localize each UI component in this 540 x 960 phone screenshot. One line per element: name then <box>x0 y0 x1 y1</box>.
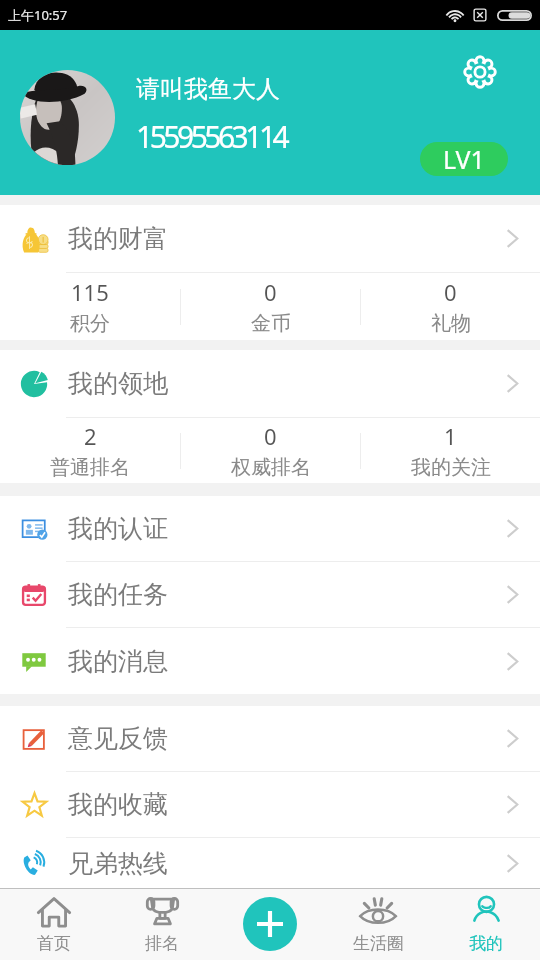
staticText: 上午10:57 <box>8 6 68 24</box>
staticText: 生活圈 <box>353 933 404 954</box>
button[interactable]: Avatar <box>20 70 115 165</box>
button[interactable]: Add <box>243 897 297 951</box>
staticText: 兄弟热线 <box>68 848 168 879</box>
button[interactable]: 意见反馈 <box>0 706 540 771</box>
button[interactable]: 我的 <box>432 889 540 960</box>
button[interactable]: 我的任务 <box>0 562 540 627</box>
staticText: 普通排名 <box>50 455 130 480</box>
staticText: 1 <box>444 421 457 451</box>
button[interactable]: 排名 <box>108 889 216 960</box>
button[interactable]: 生活圈 <box>324 889 432 960</box>
staticText: 我的 <box>469 933 503 954</box>
button[interactable]: 首页 <box>0 889 108 960</box>
staticText: 115 <box>71 277 109 307</box>
button[interactable]: 0 <box>361 273 540 340</box>
staticText: 权威排名 <box>231 455 311 480</box>
staticText: 我的消息 <box>68 646 168 677</box>
staticText: 排名 <box>145 933 179 954</box>
button[interactable]: 1 <box>361 418 540 483</box>
staticText: 意见反馈 <box>68 723 168 754</box>
staticText: 0 <box>444 277 457 307</box>
staticText: 我的财富 <box>68 223 168 254</box>
staticText: 0 <box>264 277 277 307</box>
staticText: 礼物 <box>431 311 471 336</box>
button[interactable]: 我的认证 <box>0 496 540 561</box>
button[interactable]: 兄弟热线 <box>0 838 540 888</box>
staticText: 请叫我鱼大人 <box>136 74 280 104</box>
button[interactable]: 0 <box>181 418 360 483</box>
button[interactable]: 2 <box>0 418 180 483</box>
staticText: 我的关注 <box>411 455 491 480</box>
staticText: 我的领地 <box>68 368 168 399</box>
staticText: 2 <box>84 421 97 451</box>
staticText: 我的认证 <box>68 513 168 544</box>
button[interactable]: 我的收藏 <box>0 772 540 837</box>
staticText: LV1 <box>443 142 485 176</box>
button[interactable]: LV1 <box>420 142 508 176</box>
button[interactable]: 0 <box>181 273 360 340</box>
staticText: 15595563114 <box>136 116 287 157</box>
button[interactable]: Settings <box>460 52 500 92</box>
staticText: 积分 <box>70 311 110 336</box>
staticText: 首页 <box>37 933 71 954</box>
staticText: 金币 <box>251 311 291 336</box>
button[interactable]: 我的消息 <box>0 628 540 694</box>
staticText: 我的收藏 <box>68 789 168 820</box>
button[interactable]: 115 <box>0 273 180 340</box>
staticText: 我的任务 <box>68 579 168 610</box>
staticText: 0 <box>264 421 277 451</box>
button[interactable]: 我的领地 <box>0 350 540 417</box>
button[interactable]: 我的财富 <box>0 205 540 272</box>
